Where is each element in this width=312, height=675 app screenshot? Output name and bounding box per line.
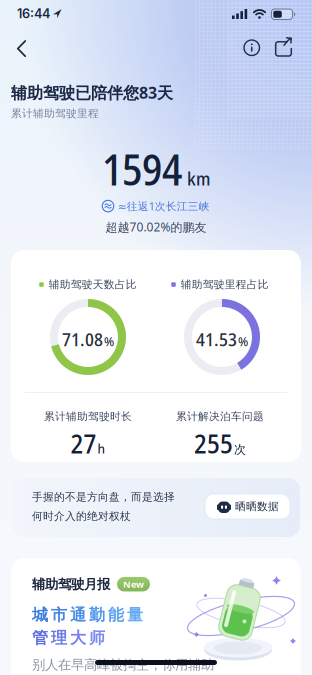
- staticText: 累计辅助驾驶时长: [44, 410, 132, 423]
- staticText: ≈往返1次长江三峡: [118, 199, 210, 213]
- staticText: 晒晒数据: [235, 500, 279, 513]
- staticText: 71.08: [62, 326, 103, 352]
- button[interactable]: Share: [271, 36, 297, 61]
- staticText: 能: [108, 605, 124, 625]
- staticText: 量: [127, 605, 143, 625]
- staticText: 师: [89, 628, 105, 648]
- button[interactable]: 辅助驾驶月报: [11, 558, 301, 675]
- staticText: 手握的不是方向盘，而是选择: [32, 490, 175, 504]
- staticText: 理: [51, 628, 67, 648]
- staticText: 27: [70, 425, 96, 461]
- button[interactable]: 晒晒数据: [205, 494, 290, 519]
- staticText: h: [97, 441, 105, 457]
- staticText: 41.53: [196, 326, 237, 352]
- staticText: 累计辅助驾驶里程: [11, 107, 99, 120]
- staticText: 何时介入的绝对权杖: [32, 510, 131, 523]
- staticText: 辅助驾驶月报: [32, 576, 110, 592]
- staticText: 超越70.02%的鹏友: [105, 219, 206, 235]
- staticText: 管: [32, 628, 48, 648]
- staticText: 大: [70, 628, 86, 648]
- button[interactable]: Info: [240, 36, 263, 59]
- staticText: %: [104, 334, 114, 349]
- staticText: 辅助驾驶已陪伴您83天: [11, 82, 173, 103]
- staticText: 1594: [102, 140, 182, 198]
- staticText: %: [238, 334, 248, 349]
- staticText: 累计解决泊车问题: [176, 410, 264, 423]
- staticText: New: [123, 578, 144, 590]
- staticText: 别人在早高峰被掏空，你用辅助: [32, 656, 214, 673]
- staticText: 辅助驾驶里程占比: [181, 278, 269, 291]
- staticText: 通: [70, 605, 86, 625]
- staticText: 次: [234, 442, 246, 457]
- staticText: 城: [32, 605, 48, 625]
- staticText: km: [187, 166, 210, 191]
- staticText: 勤: [89, 605, 105, 625]
- staticText: 16:44: [17, 6, 50, 21]
- button[interactable]: Back: [10, 36, 34, 62]
- staticText: 255: [194, 425, 233, 461]
- staticText: 辅助驾驶天数占比: [49, 278, 137, 291]
- staticText: 市: [51, 605, 67, 625]
